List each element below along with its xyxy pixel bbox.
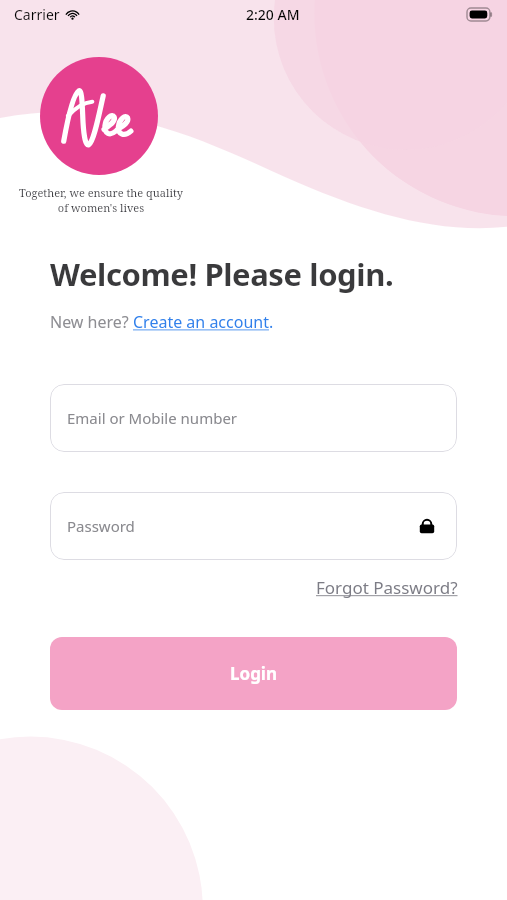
- staticText: Login: [230, 662, 278, 685]
- staticText: .: [269, 311, 274, 333]
- staticText: New here?: [50, 311, 133, 333]
- staticText: Create an account: [133, 311, 269, 333]
- staticText: 2:20 AM: [246, 5, 300, 24]
- staticText: Forgot Password?: [316, 576, 458, 599]
- staticText: Welcome! Please login.: [50, 253, 394, 295]
- button[interactable]: Show password: [414, 513, 440, 539]
- button[interactable]: Password: [50, 492, 457, 560]
- staticText: Carrier: [14, 5, 60, 24]
- button[interactable]: Forgot Password?: [316, 576, 458, 599]
- button[interactable]: Login: [50, 637, 457, 710]
- staticText: Email or Mobile number: [67, 408, 238, 428]
- staticText: Together, we ensure the quality of women…: [16, 185, 186, 215]
- staticText: Password: [67, 516, 135, 536]
- button[interactable]: Create an account: [133, 311, 269, 333]
- button[interactable]: Email or Mobile number: [50, 384, 457, 452]
